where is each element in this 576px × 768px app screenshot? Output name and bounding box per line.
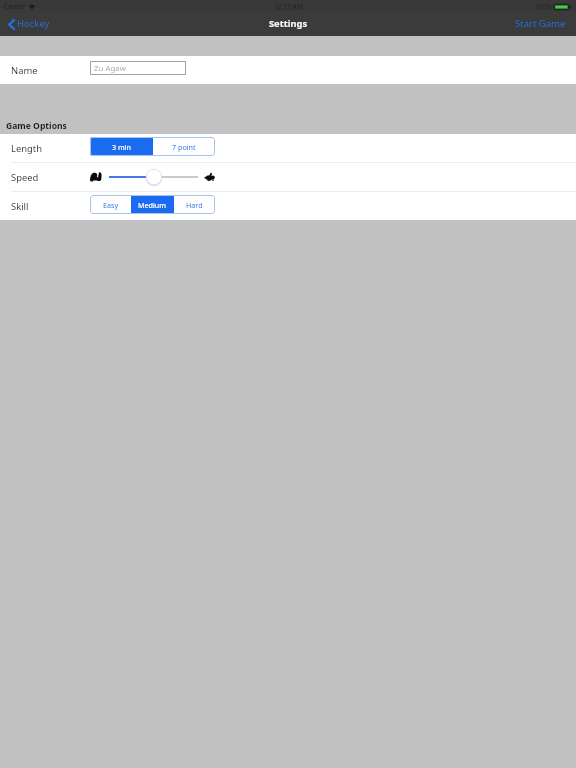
staticText: Game Options [6, 120, 67, 132]
staticText: 100% [535, 2, 552, 11]
button[interactable]: Start Game [507, 14, 576, 35]
staticText: Hockey [17, 17, 50, 30]
button[interactable]: 3 min [90, 137, 152, 156]
button[interactable]: Zu Agaw [90, 61, 186, 75]
staticText: 12:15 AM [274, 2, 303, 11]
button[interactable]: Hard [174, 195, 215, 214]
button[interactable]: Easy [90, 195, 131, 214]
button[interactable]: Medium [132, 195, 173, 214]
button[interactable]: 7 point [153, 137, 215, 156]
staticText: Easy [103, 200, 119, 210]
staticText: Hard [186, 200, 203, 210]
staticText: Zu Agaw [94, 63, 126, 74]
staticText: Settings [269, 17, 308, 30]
staticText: Carrier [4, 2, 26, 11]
staticText: Length [11, 142, 42, 155]
other: Back [8, 19, 15, 30]
staticText: Speed [11, 171, 39, 184]
button[interactable]: Back [0, 14, 58, 35]
staticText: Name [11, 64, 38, 77]
staticText: Start Game [515, 17, 566, 30]
staticText: Skill [11, 200, 29, 213]
button[interactable]: Speed slider [109, 168, 198, 186]
other: Fast [204, 172, 215, 182]
staticText: Medium [138, 200, 167, 210]
staticText: 3 min [112, 142, 131, 152]
other: Slow [90, 172, 102, 182]
staticText: 7 point [172, 142, 196, 152]
